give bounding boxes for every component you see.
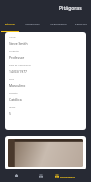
staticText: Católica (9, 97, 22, 102)
button[interactable]: ATRIBUTOS (20, 16, 45, 32)
staticText: Professor (9, 55, 25, 60)
button[interactable]: Sexo (5, 74, 86, 88)
staticText: Pitágoras (59, 5, 82, 12)
staticText: PERÍCIAS (75, 22, 87, 25)
button[interactable]: BÁSICO (0, 16, 20, 32)
staticText: Profissão (9, 50, 19, 53)
button[interactable]: Data de Nascimento (5, 60, 86, 74)
staticText: 5 (9, 111, 11, 116)
staticText: Data de Nascimento (9, 64, 31, 67)
button[interactable]: APRIMORAM (45, 16, 71, 32)
button[interactable]: Campanhas (36, 171, 45, 180)
staticText: Idade (9, 106, 16, 109)
staticText: Masculino (9, 83, 26, 88)
staticText: Personagens (60, 175, 75, 178)
staticText: ATRIBUTOS (25, 22, 40, 25)
staticText: APRIMORAM (50, 22, 67, 25)
staticText: 14/03/1977 (9, 69, 28, 74)
staticText: Steve Smith (9, 41, 28, 46)
button[interactable]: Personagens (54, 172, 76, 180)
button[interactable]: Religião (5, 88, 86, 102)
button[interactable]: Profissão (5, 46, 86, 60)
staticText: Nome (9, 36, 16, 39)
staticText: Sexo (9, 78, 15, 81)
staticText: BÁSICO (5, 22, 15, 25)
staticText: Religião (9, 92, 18, 95)
button[interactable]: Nome (5, 32, 86, 46)
button[interactable]: PERÍCIAS (71, 16, 91, 32)
button[interactable]: Início (12, 171, 21, 180)
button[interactable]: Idade (5, 102, 86, 116)
